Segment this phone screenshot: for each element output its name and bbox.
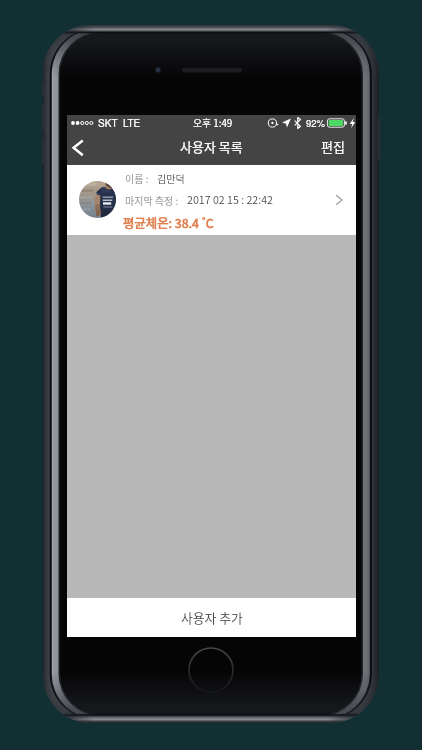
button[interactable]: 이름 : <box>67 165 356 235</box>
button[interactable]: Back <box>67 131 99 165</box>
staticText: 편집 <box>321 137 345 156</box>
staticText: SKT <box>98 116 118 130</box>
button[interactable]: 편집 <box>312 131 354 162</box>
staticText: LTE <box>123 116 141 130</box>
staticText: 92% <box>306 116 326 130</box>
staticText: 사용자 추가 <box>181 608 243 627</box>
staticText: 마지막 측정 : <box>125 193 179 207</box>
button[interactable]: 사용자 추가 <box>67 598 356 637</box>
staticText: 오후 1:49 <box>193 116 233 130</box>
staticText: 김만덕 <box>157 171 185 185</box>
staticText: 이름 : <box>125 171 149 185</box>
staticText: 평균체온: 38.4 ˚C <box>123 214 214 232</box>
staticText: 사용자 목록 <box>180 137 243 156</box>
staticText: 2017 02 15 : 22:42 <box>187 192 273 207</box>
